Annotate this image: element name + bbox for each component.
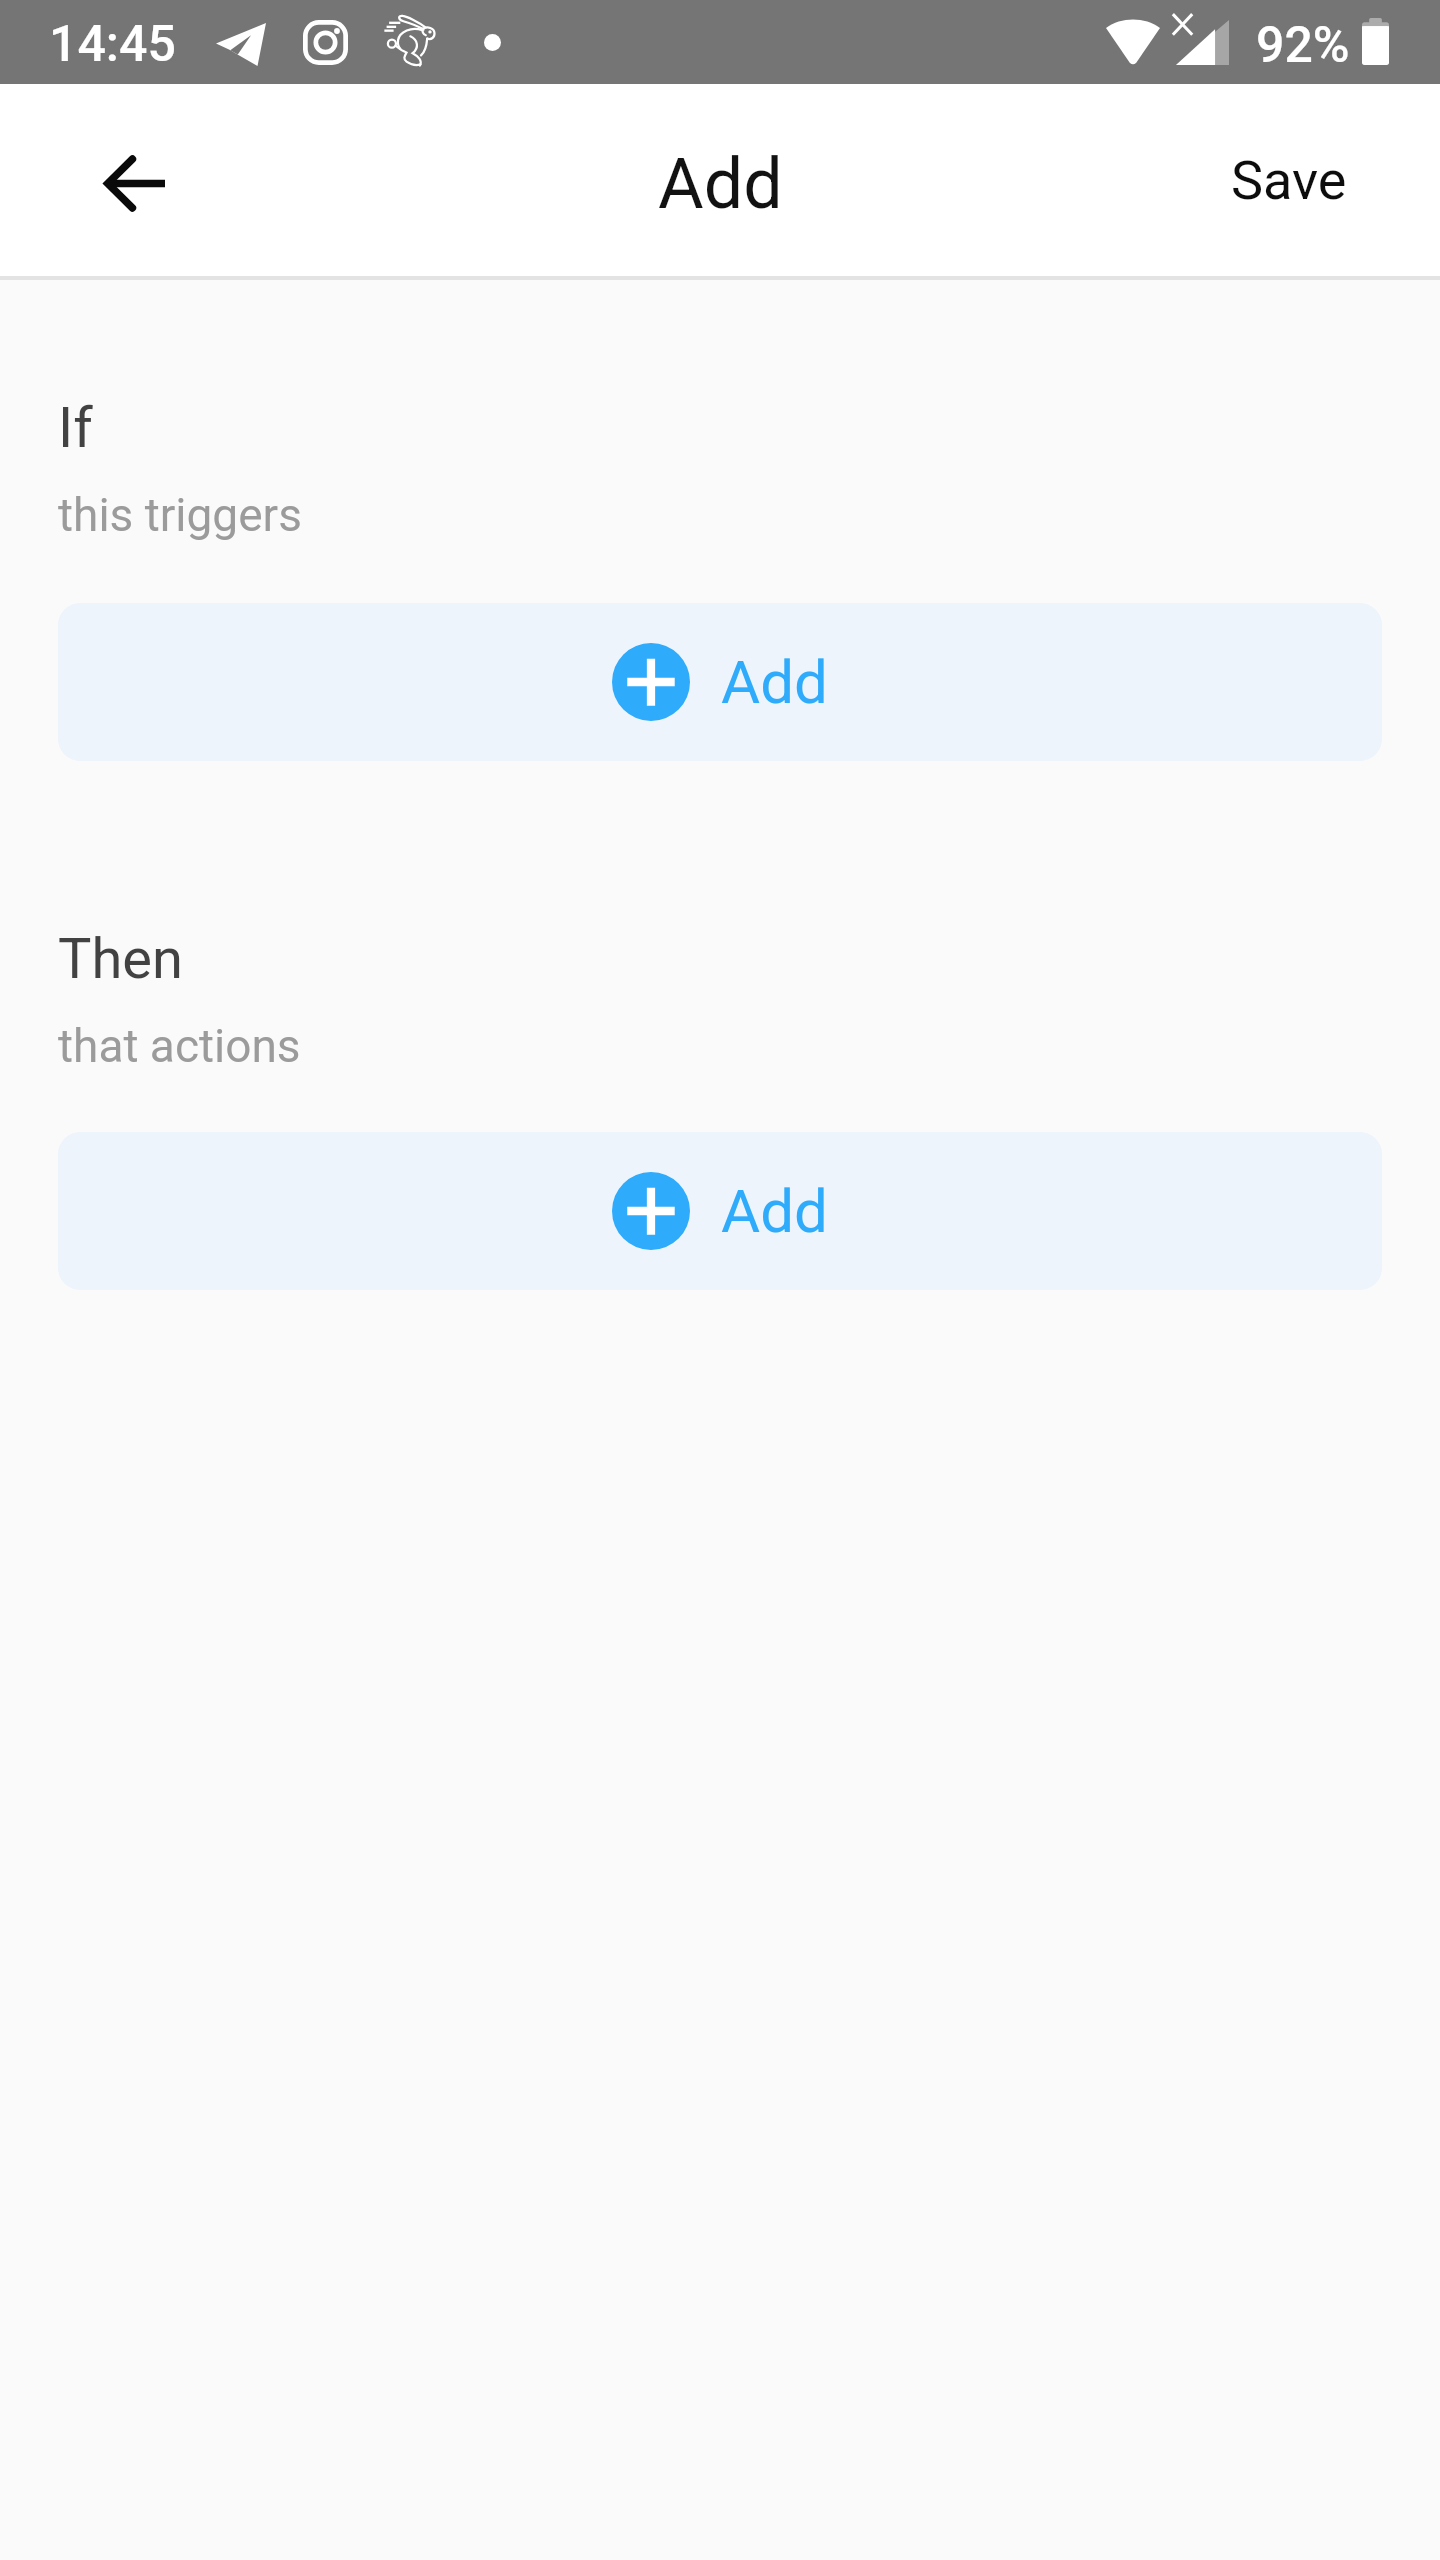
- button[interactable]: Save: [1191, 113, 1440, 248]
- staticText: that actions: [58, 1019, 301, 1073]
- staticText: Add: [721, 1176, 828, 1246]
- button[interactable]: Back: [82, 131, 186, 235]
- staticText: this triggers: [58, 488, 302, 542]
- staticText: Then: [58, 926, 183, 992]
- button[interactable]: Add: [58, 603, 1382, 761]
- staticText: If: [58, 395, 93, 461]
- staticText: 14:45: [49, 15, 176, 74]
- button[interactable]: Add: [58, 1132, 1382, 1290]
- staticText: Save: [1231, 149, 1347, 212]
- staticText: Add: [721, 647, 828, 717]
- staticText: Add: [658, 143, 783, 225]
- staticText: 92%: [1256, 16, 1350, 75]
